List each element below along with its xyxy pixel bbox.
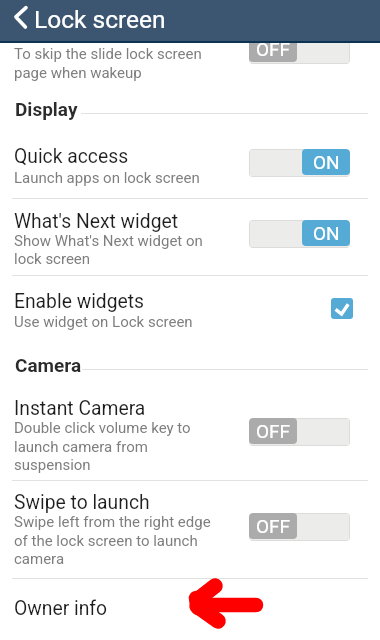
button[interactable]: Enable widgets checkbox [331, 298, 353, 319]
button[interactable]: Double click volume key to [14, 419, 191, 437]
button[interactable]: of the lock screen to launch [14, 532, 198, 550]
button[interactable]: Owner info [14, 597, 108, 620]
button[interactable]: camera [14, 550, 65, 568]
button[interactable]: Show What's Next widget on [14, 232, 203, 250]
staticText: OFF [256, 420, 291, 442]
button[interactable]: Quick access [14, 145, 129, 168]
button[interactable]: Use widget on Lock screen [14, 313, 193, 331]
staticText: ON [313, 222, 340, 244]
button[interactable]: Instant Camera [14, 397, 146, 420]
staticText: Display [15, 98, 78, 120]
button[interactable]: Back [0, 0, 380, 41]
button[interactable]: ON [250, 221, 349, 247]
button[interactable]: Swipe to launch [14, 491, 150, 514]
button[interactable]: page when wakeup [14, 64, 142, 82]
button[interactable]: Swipe left from the right edge [14, 513, 211, 531]
button[interactable]: What's Next widget [14, 210, 179, 233]
staticText: OFF [256, 38, 291, 60]
button[interactable]: ON [250, 150, 349, 176]
button[interactable]: OFF [250, 514, 349, 540]
button[interactable]: lock screen [14, 250, 91, 268]
staticText: ON [313, 151, 340, 173]
button[interactable]: suspension [14, 456, 91, 474]
button[interactable]: Launch apps on lock screen [14, 169, 200, 187]
staticText: OFF [256, 515, 291, 537]
other: Back [13, 6, 28, 29]
button[interactable]: Enable widgets [14, 290, 145, 313]
button[interactable]: OFF [250, 37, 349, 63]
button[interactable]: OFF [250, 419, 349, 445]
staticText: Lock screen [34, 5, 166, 34]
staticText: Camera [15, 354, 82, 376]
button[interactable]: To skip the slide lock screen [14, 45, 202, 63]
button[interactable]: launch camera from [14, 438, 148, 456]
